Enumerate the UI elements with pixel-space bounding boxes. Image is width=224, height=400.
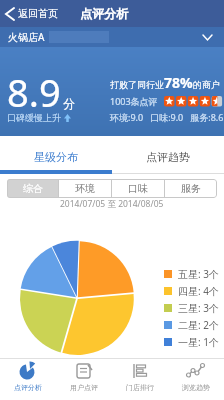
staticText: 点评趋势 (146, 150, 190, 164)
button[interactable]: 环境 (59, 179, 111, 198)
staticText: 环境:9.0 口味:9.0 服务:8.6 (110, 111, 224, 123)
button[interactable]: 点评分析 (0, 359, 56, 400)
staticText: 环境 (75, 182, 95, 195)
button[interactable]: 用户点评 (56, 359, 112, 400)
staticText: 打败了同行业 (110, 79, 164, 90)
button[interactable]: 火锅店A (0, 27, 224, 47)
staticText: 1003条点评 (110, 95, 158, 107)
staticText: 8.9 (7, 66, 61, 118)
staticText: 点评分析 (14, 383, 42, 392)
staticText: 五星: 3个 (178, 267, 219, 281)
staticText: 浏览趋势 (182, 383, 210, 392)
staticText: 的商户 (193, 79, 220, 90)
staticText: 服务 (181, 182, 201, 195)
button[interactable]: 服务 (165, 179, 217, 198)
button[interactable]: 综合 (7, 179, 58, 198)
button[interactable]: 门店排行 (112, 359, 168, 400)
staticText: 一星: 1个 (178, 335, 219, 349)
staticText: 用户点评 (70, 383, 98, 392)
staticText: 分 (63, 96, 75, 111)
staticText: 2014/07/05 至 2014/08/05 (60, 198, 164, 210)
staticText: 门店排行 (126, 383, 154, 392)
button[interactable]: 点评趋势 (112, 136, 224, 174)
button[interactable]: 星级分布 (0, 136, 112, 174)
button[interactable]: 浏览趋势 (168, 359, 224, 400)
staticText: 口味 (128, 182, 148, 195)
button[interactable]: 返回首页 (6, 7, 58, 20)
staticText: 四星: 4个 (178, 284, 219, 298)
button[interactable]: 口味 (112, 179, 164, 198)
staticText: 三星: 3个 (178, 301, 219, 315)
staticText: 星级分布 (34, 150, 78, 164)
staticText: 二星: 2个 (178, 318, 219, 332)
staticText: 点评分析 (80, 6, 128, 21)
staticText: 返回首页 (18, 7, 58, 20)
staticText: 口碑缓慢上升 (7, 112, 61, 123)
staticText: 78% (164, 73, 193, 92)
staticText: 火锅店A (8, 30, 45, 44)
staticText: 综合 (23, 182, 43, 195)
